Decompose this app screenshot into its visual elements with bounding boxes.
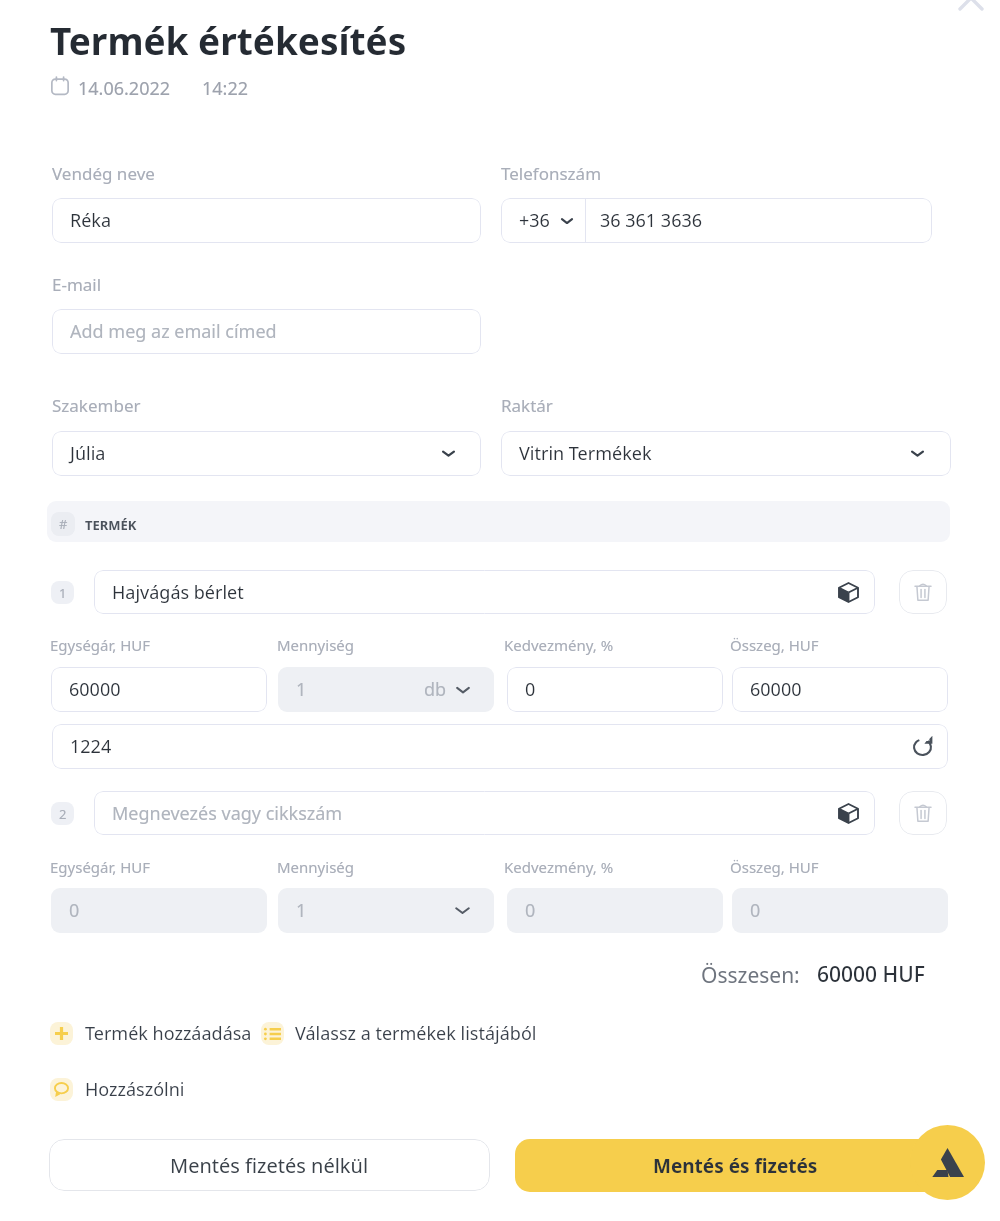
staticText: Hajvágás bérlet [112, 580, 244, 605]
staticText: Mennyiség [277, 635, 354, 655]
staticText: Összeg, HUF [730, 857, 819, 877]
staticText: 2 [59, 805, 67, 823]
button[interactable]: Vitrin Termékek [501, 431, 951, 476]
staticText: Termék hozzáadása [85, 1021, 252, 1046]
button[interactable]: 0 [732, 888, 948, 933]
button[interactable]: Assistant [910, 1125, 985, 1200]
staticText: Telefonszám [501, 162, 602, 185]
button[interactable]: Close [949, 0, 993, 20]
button[interactable]: 60000 [51, 667, 267, 712]
button[interactable]: 0 [51, 888, 267, 933]
button[interactable]: Hajvágás bérlet [94, 570, 875, 614]
staticText: 1 [59, 584, 67, 602]
button[interactable]: Mentés fizetés nélkül [49, 1139, 490, 1191]
button[interactable]: +36 [501, 198, 932, 243]
button[interactable]: 60000 [732, 667, 948, 712]
staticText: Mennyiség [277, 857, 354, 877]
staticText: Kedvezmény, % [504, 635, 614, 655]
staticText: Réka [70, 208, 112, 233]
button[interactable]: Réka [52, 198, 481, 243]
staticText: 60000 HUF [817, 960, 925, 989]
staticText: 36 361 3636 [600, 208, 703, 233]
staticText: 1 [296, 677, 307, 702]
button[interactable]: 1 [278, 667, 494, 712]
staticText: Mentés fizetés nélkül [170, 1152, 369, 1179]
staticText: TERMÉK [85, 516, 137, 534]
staticText: Raktár [501, 394, 553, 417]
button[interactable]: 0 [507, 888, 723, 933]
staticText: Júlia [70, 441, 106, 466]
staticText: Hozzászólni [85, 1077, 185, 1102]
staticText: Megnevezés vagy cikkszám [112, 801, 343, 826]
staticText: 1224 [70, 734, 112, 759]
button[interactable]: Termék hozzáadása [50, 1021, 252, 1046]
button[interactable]: 1224 [52, 724, 948, 769]
staticText: 0 [525, 898, 536, 923]
staticText: 1 [296, 898, 307, 923]
button[interactable]: 1 [278, 888, 494, 933]
button[interactable]: Add meg az email címed [52, 309, 481, 354]
button[interactable]: Megnevezés vagy cikkszám [94, 791, 875, 835]
staticText: Mentés és fizetés [653, 1153, 818, 1179]
staticText: 14.06.2022 [78, 76, 171, 101]
staticText: 60000 [69, 677, 121, 702]
button[interactable]: Válassz a termékek listájából [261, 1021, 537, 1046]
staticText: 0 [525, 677, 536, 702]
staticText: 14:22 [202, 76, 249, 101]
button[interactable]: Mentés és fizetés [515, 1139, 956, 1192]
staticText: E-mail [52, 273, 102, 296]
staticText: db [424, 677, 447, 702]
staticText: Összeg, HUF [730, 635, 819, 655]
staticText: Termék értékesítés [50, 15, 407, 65]
button[interactable]: Hozzászólni [50, 1077, 185, 1102]
staticText: 0 [750, 898, 761, 923]
staticText: Vitrin Termékek [519, 441, 652, 466]
button[interactable]: 0 [507, 667, 723, 712]
staticText: Vendég neve [52, 162, 155, 185]
staticText: Egységár, HUF [50, 857, 151, 877]
staticText: 0 [69, 898, 80, 923]
staticText: Kedvezmény, % [504, 857, 614, 877]
staticText: Add meg az email címed [70, 319, 277, 344]
staticText: +36 [519, 208, 550, 233]
button[interactable]: Delete item 2 [899, 791, 947, 835]
staticText: 60000 [750, 677, 802, 702]
staticText: Egységár, HUF [50, 635, 151, 655]
button[interactable]: Júlia [52, 431, 481, 476]
staticText: Összesen: [701, 961, 800, 990]
staticText: Szakember [52, 394, 141, 417]
staticText: Válassz a termékek listájából [295, 1021, 537, 1046]
staticText: # [59, 515, 68, 533]
button[interactable]: Delete item 1 [899, 570, 947, 614]
